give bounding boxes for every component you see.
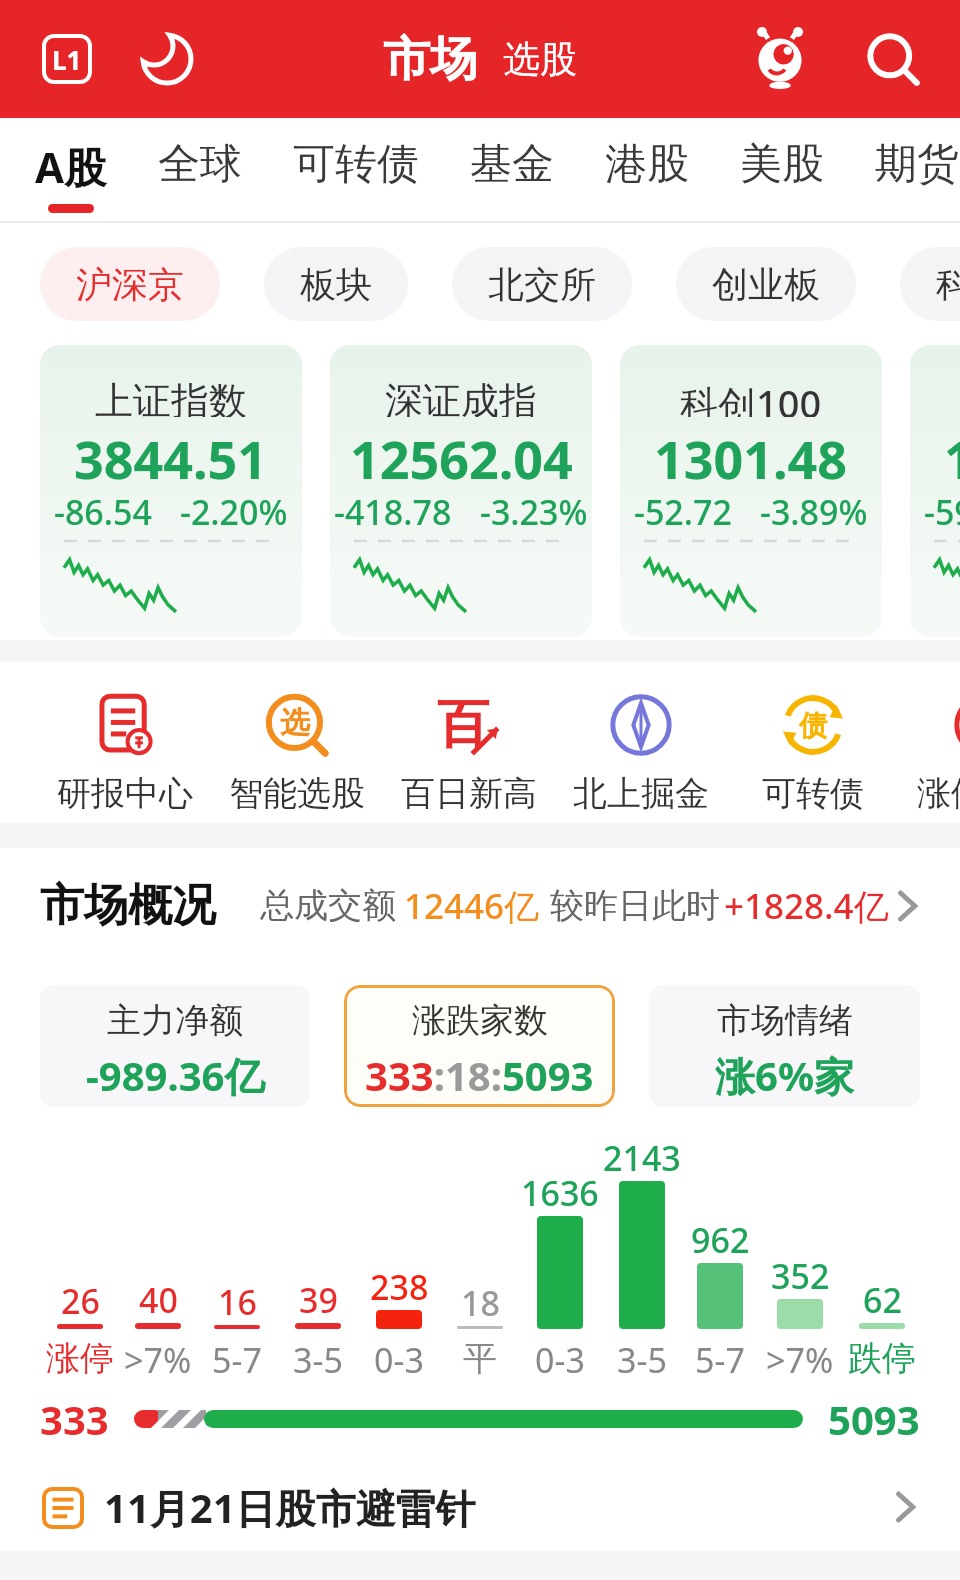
button[interactable]: 研报中心 bbox=[39, 688, 211, 815]
staticText: -59.31 bbox=[924, 489, 960, 527]
staticText: 科创100 bbox=[680, 377, 822, 417]
button[interactable]: 美股 bbox=[740, 138, 824, 209]
button[interactable]: L1 bbox=[42, 34, 92, 84]
staticText: 智能选股 bbox=[229, 772, 365, 815]
button[interactable]: 市场概况 bbox=[0, 848, 960, 963]
staticText: 26 bbox=[61, 1278, 100, 1324]
staticText: 涨跌家数 bbox=[412, 999, 548, 1042]
staticText: 市场概况 bbox=[40, 878, 216, 933]
staticText: 0-3 bbox=[374, 1337, 424, 1383]
button[interactable]: 上证指数 bbox=[40, 345, 302, 637]
staticText: -2.20% bbox=[180, 489, 288, 527]
staticText: 可转债 bbox=[293, 138, 419, 191]
staticText: 12446亿 bbox=[404, 882, 540, 930]
button[interactable]: 选 bbox=[211, 688, 383, 815]
button[interactable] bbox=[140, 32, 194, 86]
staticText: 百日新高 bbox=[401, 772, 537, 815]
staticText: -52.72 bbox=[634, 489, 732, 527]
button[interactable]: 创业板指 bbox=[910, 345, 960, 637]
button[interactable]: 涨跌家数 bbox=[344, 985, 615, 1107]
staticText: 选 bbox=[280, 704, 310, 742]
staticText: 0-3 bbox=[535, 1337, 585, 1383]
staticText: 1301.48 bbox=[654, 423, 848, 483]
staticText: 5-7 bbox=[695, 1337, 745, 1383]
staticText: -3.89% bbox=[760, 489, 868, 527]
staticText: 上证指数 bbox=[95, 377, 247, 417]
button[interactable]: 市场情绪 bbox=[649, 985, 920, 1107]
staticText: 39 bbox=[299, 1277, 338, 1323]
button[interactable]: 创业板 bbox=[676, 247, 856, 321]
button[interactable]: 港股 bbox=[605, 138, 689, 209]
staticText: 创业板 bbox=[712, 262, 820, 307]
button[interactable]: 北上掘金 bbox=[555, 688, 727, 815]
staticText: 债 bbox=[799, 708, 827, 743]
button[interactable]: 全球 bbox=[158, 138, 242, 209]
button[interactable]: 沪深京 bbox=[40, 247, 220, 321]
staticText: -3.23% bbox=[480, 489, 588, 527]
staticText: 沪深京 bbox=[76, 262, 184, 307]
button[interactable]: 基金 bbox=[470, 138, 554, 209]
staticText: 3-5 bbox=[293, 1337, 343, 1383]
staticText: 涨停雷达 bbox=[917, 772, 960, 815]
button[interactable]: 板块 bbox=[264, 247, 408, 321]
staticText: 期货 bbox=[875, 138, 959, 191]
button[interactable]: 科创100 bbox=[620, 345, 882, 637]
staticText: 全球 bbox=[158, 138, 242, 191]
staticText: -418.78 bbox=[334, 489, 452, 527]
staticText: 1451.62 bbox=[944, 423, 960, 483]
staticText: 百 bbox=[437, 692, 489, 758]
staticText: 研报中心 bbox=[57, 772, 193, 815]
staticText: 238 bbox=[370, 1264, 429, 1310]
staticText: 40 bbox=[139, 1277, 178, 1323]
staticText: 较昨日此时 bbox=[550, 884, 720, 927]
button[interactable]: 选股 bbox=[503, 36, 577, 83]
staticText: 科创板 bbox=[936, 262, 960, 307]
staticText: 2143 bbox=[603, 1135, 681, 1181]
staticText: 5-7 bbox=[212, 1337, 262, 1383]
staticText: -86.54 bbox=[54, 489, 152, 527]
staticText: 跌停 bbox=[848, 1337, 916, 1380]
staticText: 11月21日股市避雷针 bbox=[104, 1480, 476, 1535]
staticText: 基金 bbox=[470, 138, 554, 191]
staticText: 总成交额 bbox=[260, 884, 396, 927]
button[interactable]: 涨停雷达 bbox=[899, 688, 960, 815]
button[interactable]: 可转债 bbox=[293, 138, 419, 209]
staticText: 可转债 bbox=[762, 772, 864, 815]
button[interactable]: 科创板 bbox=[900, 247, 960, 321]
button[interactable]: 债 bbox=[727, 688, 899, 815]
staticText: 涨停 bbox=[46, 1337, 114, 1380]
staticText: 16 bbox=[218, 1279, 257, 1325]
staticText: -989.36亿 bbox=[86, 1048, 265, 1103]
staticText: A股 bbox=[35, 138, 107, 195]
staticText: +1828.4亿 bbox=[724, 882, 889, 930]
staticText: 333:18:5093 bbox=[365, 1048, 594, 1102]
button[interactable]: 百 bbox=[383, 688, 555, 815]
staticText: 板块 bbox=[300, 262, 372, 307]
staticText: 18 bbox=[461, 1280, 500, 1326]
button[interactable]: 主力净额 bbox=[40, 985, 310, 1107]
staticText: L1 bbox=[52, 42, 82, 77]
staticText: 市场情绪 bbox=[717, 999, 853, 1042]
button[interactable]: 市场 bbox=[383, 30, 477, 89]
staticText: 北交所 bbox=[488, 262, 596, 307]
staticText: 62 bbox=[863, 1277, 902, 1323]
staticText: 962 bbox=[691, 1217, 750, 1263]
button[interactable]: 深证成指 bbox=[330, 345, 592, 637]
staticText: 3-5 bbox=[617, 1337, 667, 1383]
staticText: 5093 bbox=[828, 1392, 920, 1446]
staticText: 平 bbox=[463, 1337, 497, 1380]
button[interactable]: 11月21日股市避雷针 bbox=[0, 1463, 960, 1551]
staticText: 352 bbox=[771, 1253, 830, 1299]
button[interactable] bbox=[750, 29, 810, 89]
button[interactable] bbox=[866, 32, 920, 86]
staticText: 1636 bbox=[521, 1170, 599, 1216]
button[interactable]: 期货 bbox=[875, 138, 959, 209]
staticText: >7% bbox=[766, 1337, 834, 1383]
button[interactable]: A股 bbox=[35, 138, 107, 213]
staticText: 港股 bbox=[605, 138, 689, 191]
staticText: 333 bbox=[40, 1392, 109, 1446]
staticText: 主力净额 bbox=[107, 999, 243, 1042]
staticText: 深证成指 bbox=[385, 377, 537, 417]
staticText: 北上掘金 bbox=[573, 772, 709, 815]
button[interactable]: 北交所 bbox=[452, 247, 632, 321]
